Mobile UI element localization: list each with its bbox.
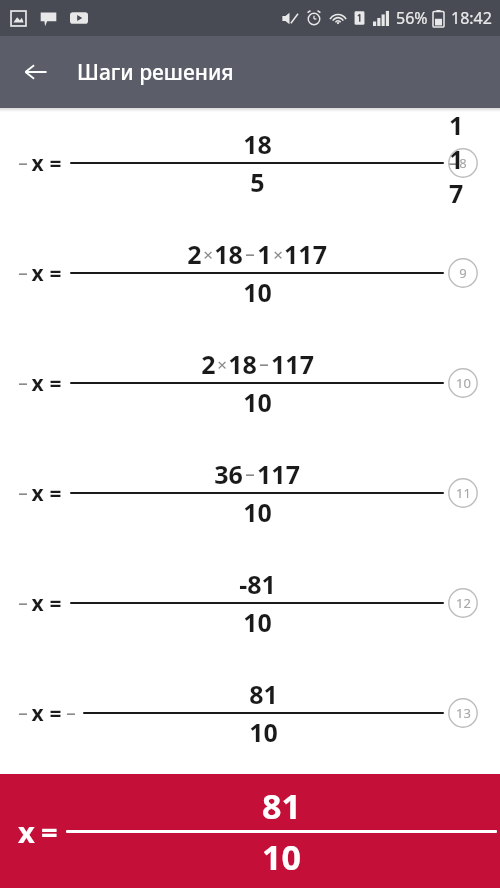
- staticText: 36: [214, 457, 243, 491]
- staticText: ×: [203, 243, 213, 266]
- staticText: –: [245, 461, 255, 487]
- staticText: 10: [243, 495, 272, 529]
- staticText: –: [18, 150, 28, 176]
- staticText: 56%: [396, 7, 428, 29]
- staticText: 1: [257, 237, 272, 271]
- staticText: ×: [273, 243, 283, 266]
- button[interactable]: –: [0, 328, 500, 438]
- staticText: –: [18, 370, 28, 396]
- staticText: x: [31, 589, 44, 618]
- button[interactable]: –: [0, 438, 500, 548]
- staticText: 10: [243, 275, 272, 309]
- staticText: 5: [250, 165, 265, 199]
- staticText: x: [18, 812, 35, 851]
- staticText: 117: [284, 237, 327, 271]
- staticText: =: [49, 149, 62, 178]
- staticText: 10: [262, 834, 301, 880]
- staticText: x: [31, 479, 44, 508]
- staticText: 12: [456, 594, 471, 612]
- staticText: x: [31, 369, 44, 398]
- staticText: –: [245, 241, 255, 267]
- staticText: 11: [456, 484, 471, 502]
- staticText: 10: [456, 374, 471, 392]
- staticText: –: [259, 351, 269, 377]
- staticText: 81: [249, 677, 278, 711]
- staticText: x: [31, 149, 44, 178]
- staticText: x: [31, 699, 44, 728]
- staticText: =: [49, 479, 62, 508]
- staticText: 117: [257, 457, 300, 491]
- staticText: 2: [201, 347, 216, 381]
- staticText: 13: [456, 704, 471, 722]
- button[interactable]: Back: [14, 50, 58, 94]
- staticText: =: [49, 369, 62, 398]
- staticText: =: [49, 699, 62, 728]
- staticText: x: [31, 259, 44, 288]
- staticText: 18: [214, 237, 243, 271]
- staticText: 10: [243, 605, 272, 639]
- staticText: =: [49, 589, 62, 618]
- staticText: ×: [217, 353, 227, 376]
- staticText: 117: [271, 347, 314, 381]
- staticText: 18: [243, 127, 272, 161]
- staticText: =: [49, 259, 62, 288]
- button[interactable]: –: [0, 658, 500, 768]
- staticText: -81: [239, 567, 276, 601]
- staticText: –: [66, 700, 76, 726]
- staticText: 81: [262, 783, 301, 829]
- button[interactable]: –: [0, 218, 500, 328]
- button[interactable]: –: [0, 108, 500, 218]
- staticText: 18:42: [451, 7, 492, 29]
- staticText: 10: [243, 385, 272, 419]
- staticText: 2: [187, 237, 202, 271]
- staticText: –: [18, 590, 28, 616]
- staticText: 8: [459, 154, 467, 172]
- staticText: 10: [249, 715, 278, 749]
- button[interactable]: x: [0, 774, 500, 888]
- staticText: –: [18, 260, 28, 286]
- staticText: 9: [459, 264, 467, 282]
- staticText: –: [18, 700, 28, 726]
- staticText: 18: [228, 347, 257, 381]
- staticText: –: [18, 480, 28, 506]
- staticText: =: [41, 812, 58, 851]
- staticText: Шаги решения: [77, 58, 234, 87]
- button[interactable]: –: [0, 548, 500, 658]
